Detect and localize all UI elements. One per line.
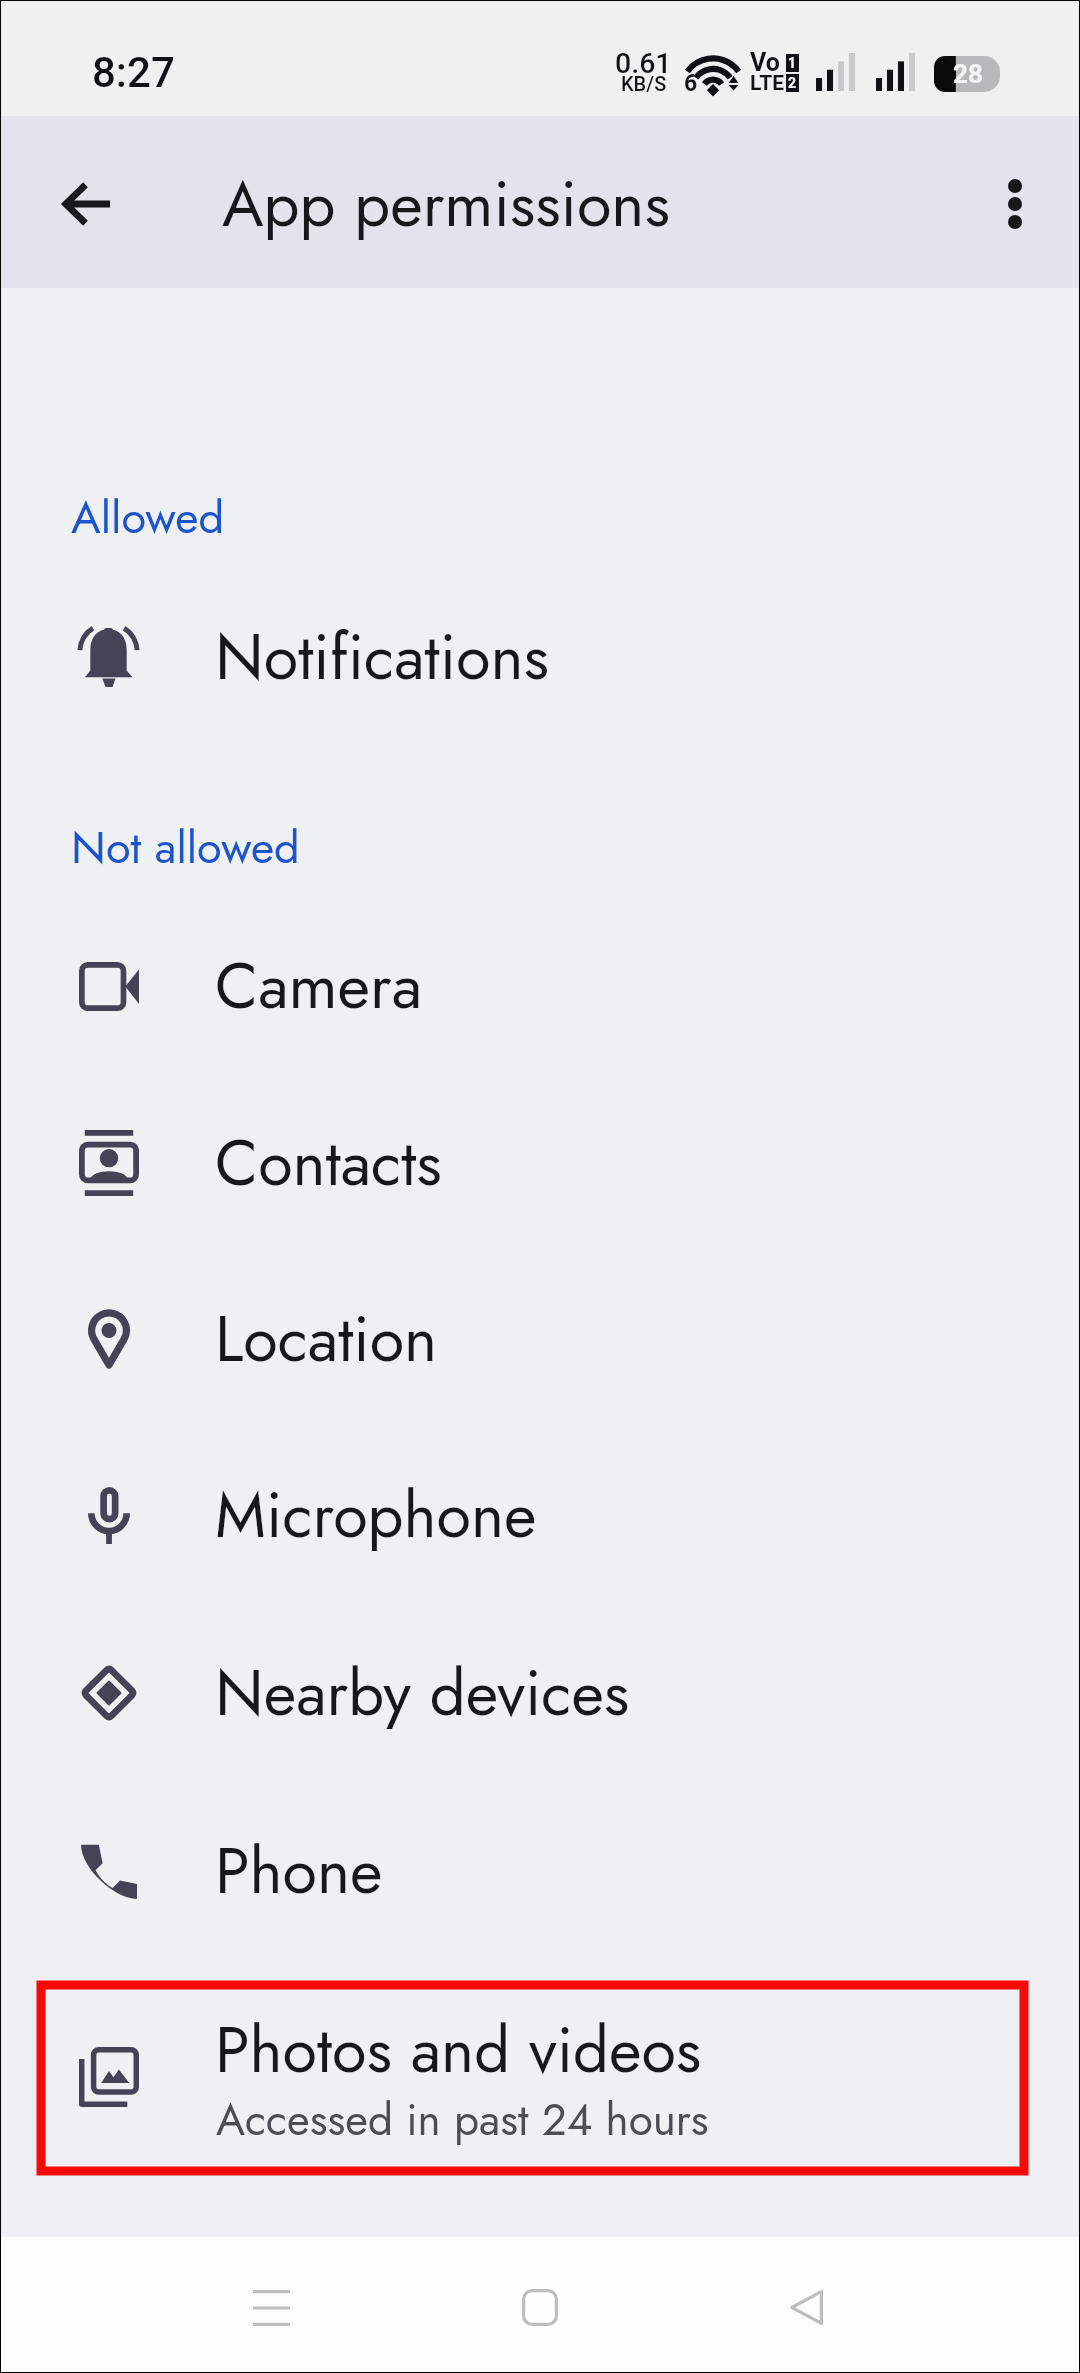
staticText: Allowed <box>71 485 225 550</box>
staticText: Vo <box>750 48 780 77</box>
button[interactable]: Photos and videos <box>1 1989 1079 2165</box>
staticText: Notifications <box>215 612 549 703</box>
button[interactable]: Microphone <box>1 1427 1079 1603</box>
button[interactable]: Back <box>27 146 143 262</box>
staticText: 1 <box>788 55 797 71</box>
staticText: Contacts <box>215 1118 442 1209</box>
button[interactable]: Contacts <box>1 1075 1079 1251</box>
staticText: 8:27 <box>92 48 175 97</box>
staticText: 0.61 <box>615 47 672 80</box>
button[interactable]: More options <box>957 146 1073 262</box>
staticText: LTE <box>750 71 785 96</box>
staticText: Microphone <box>215 1470 537 1561</box>
button[interactable]: Location <box>1 1251 1079 1427</box>
button[interactable]: Back <box>738 2240 873 2373</box>
staticText: KB/S <box>621 72 667 95</box>
staticText: Not allowed <box>71 815 300 880</box>
staticText: Phone <box>215 1826 383 1917</box>
button[interactable]: Phone <box>1 1783 1079 1959</box>
staticText: 6 <box>684 70 698 97</box>
staticText: Nearby devices <box>215 1648 630 1739</box>
button[interactable]: Nearby devices <box>1 1605 1079 1781</box>
button[interactable]: Notifications <box>1 569 1079 745</box>
staticText: 2 <box>788 75 797 91</box>
staticText: Location <box>215 1294 438 1385</box>
staticText: Camera <box>215 941 422 1032</box>
staticText: App permissions <box>222 159 670 250</box>
button[interactable]: Camera <box>1 898 1079 1074</box>
button[interactable]: Recent apps <box>204 2240 339 2373</box>
staticText: Accessed in past 24 hours <box>216 2088 709 2152</box>
button[interactable]: Home <box>472 2240 607 2373</box>
staticText: 28 <box>953 59 983 89</box>
staticText: Photos and videos <box>215 2005 702 2096</box>
